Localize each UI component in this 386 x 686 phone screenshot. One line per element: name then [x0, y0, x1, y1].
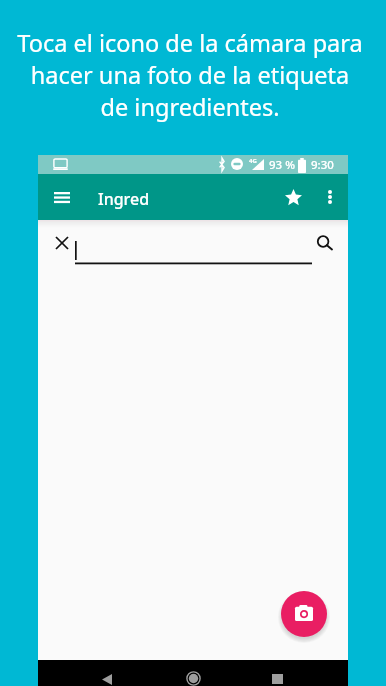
button[interactable]: Home — [170, 660, 216, 686]
button[interactable]: More options — [312, 174, 346, 220]
button[interactable]: Back — [84, 660, 130, 686]
staticText: 93 % — [269, 157, 295, 173]
staticText: Ingred — [98, 188, 150, 210]
staticText: Toca el icono de la cámara para hacer un… — [0, 27, 383, 123]
staticText: 4G — [249, 157, 257, 165]
staticText: 9:30 — [311, 157, 334, 173]
button[interactable]: Favourites — [272, 174, 314, 220]
button[interactable]: Search — [308, 226, 337, 255]
button[interactable]: Recent apps — [254, 660, 300, 686]
button[interactable]: Take a photo — [281, 591, 327, 637]
button[interactable]: Open navigation drawer — [40, 174, 84, 220]
button[interactable]: Close search — [47, 228, 76, 257]
